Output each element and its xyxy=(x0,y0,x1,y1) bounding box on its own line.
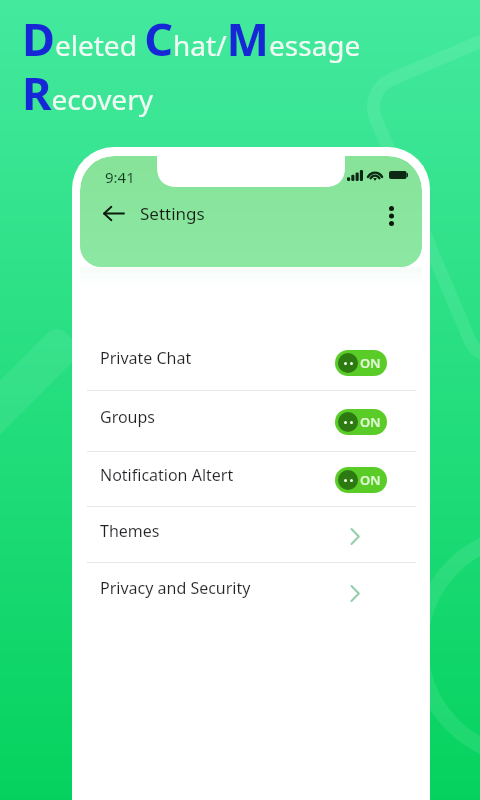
staticText: Privacy and Security xyxy=(100,577,251,599)
staticText: Recovery xyxy=(22,62,153,123)
button[interactable]: Privacy and Security xyxy=(80,563,422,620)
button[interactable]: Toggle on xyxy=(335,350,387,376)
staticText: ON xyxy=(360,471,381,489)
button[interactable]: Themes xyxy=(80,507,422,562)
button[interactable]: Toggle on xyxy=(335,467,387,493)
staticText: Settings xyxy=(140,202,205,225)
staticText: 9:41 xyxy=(105,167,135,187)
button[interactable]: Back xyxy=(97,197,129,229)
button[interactable]: Groups xyxy=(80,391,422,451)
button[interactable]: Open Themes xyxy=(343,524,367,548)
staticText: Notification Altert xyxy=(100,464,234,486)
button[interactable]: Toggle on xyxy=(335,409,387,435)
staticText: Groups xyxy=(100,406,156,428)
button[interactable]: More options xyxy=(377,199,405,227)
button[interactable]: Notification Altert xyxy=(80,452,422,506)
staticText: ON xyxy=(360,354,381,372)
staticText: ON xyxy=(360,413,381,431)
staticText: Themes xyxy=(100,520,160,542)
button[interactable]: Private Chat xyxy=(80,334,422,390)
button[interactable]: Open Privacy and Security xyxy=(343,581,367,605)
staticText: Deleted Chat/Message xyxy=(22,8,361,69)
staticText: Private Chat xyxy=(100,347,192,369)
